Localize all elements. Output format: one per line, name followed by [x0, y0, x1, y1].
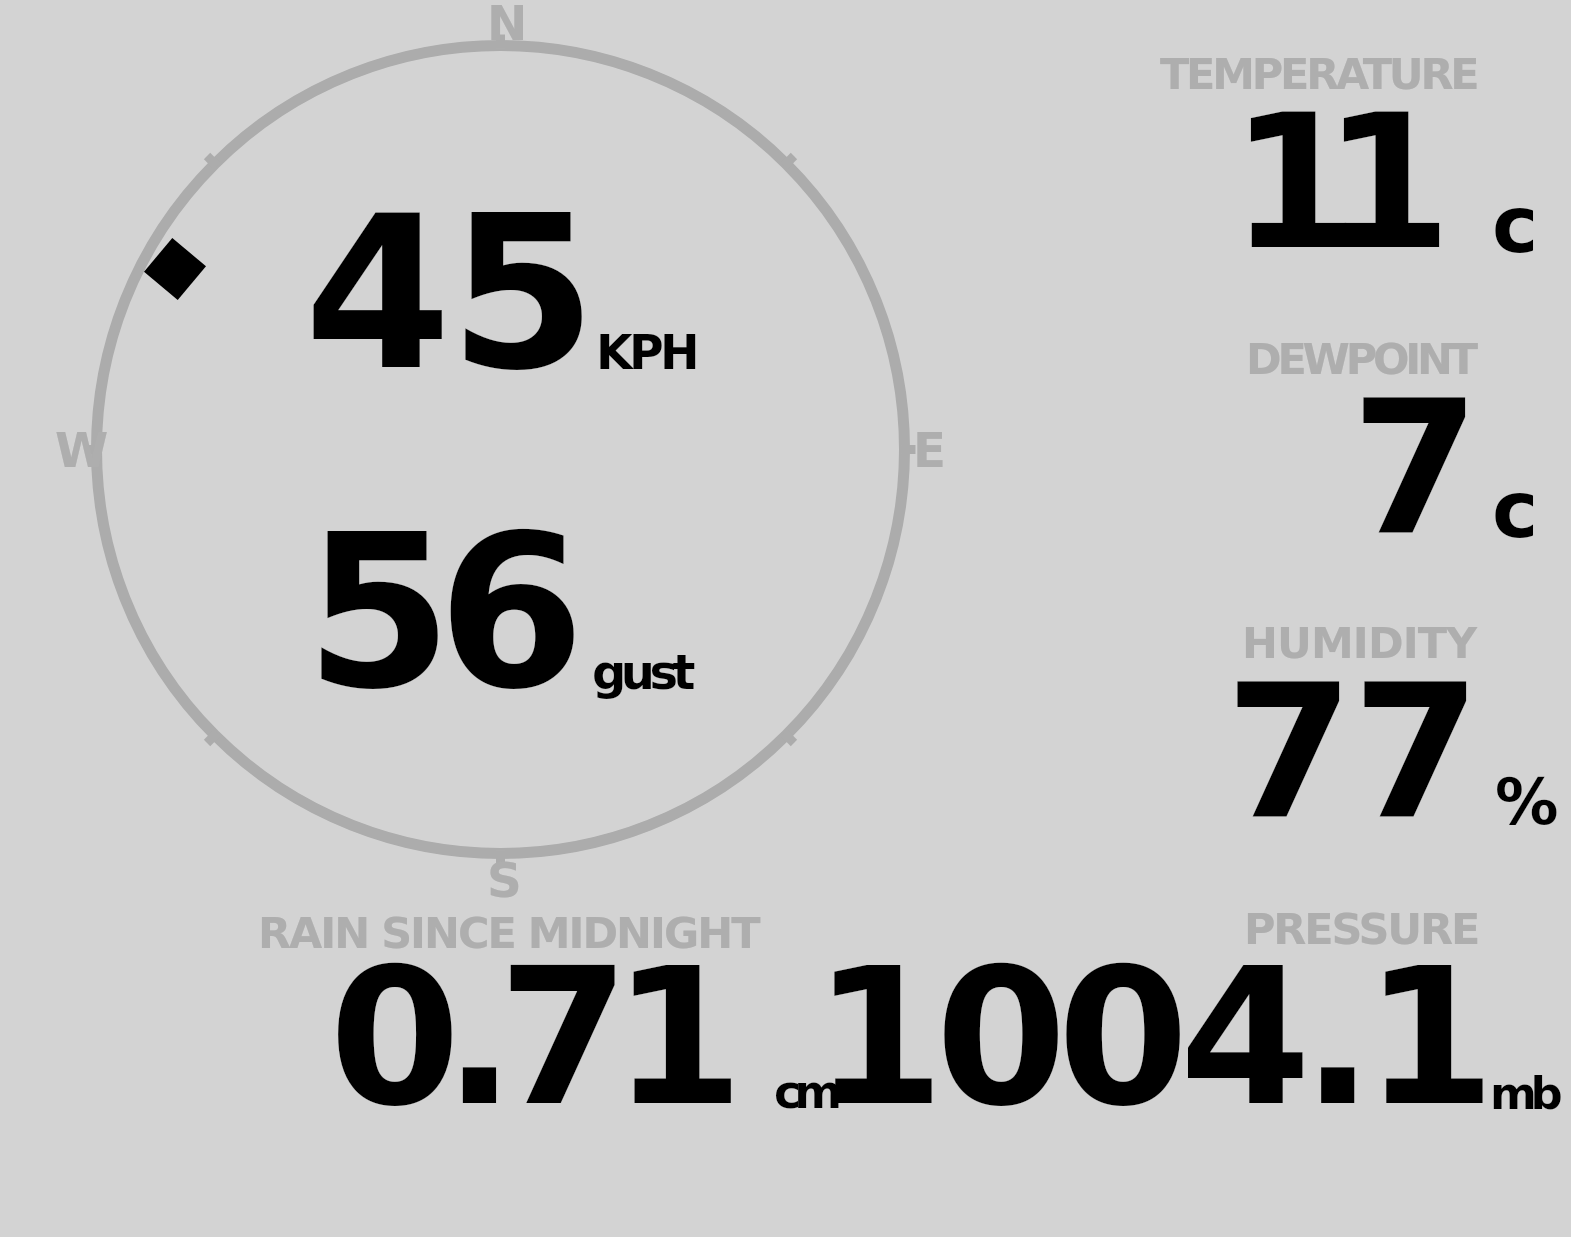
- button[interactable]: 45: [304, 170, 595, 417]
- staticText: 11: [1230, 75, 1416, 291]
- staticText: gust: [592, 644, 691, 700]
- button[interactable]: RAIN SINCE MIDNIGHT: [258, 908, 759, 958]
- staticText: %: [1495, 765, 1559, 839]
- staticText: N: [487, 0, 528, 51]
- staticText: c: [1492, 180, 1539, 271]
- staticText: KPH: [596, 325, 697, 380]
- staticText: 1004.1: [813, 927, 1487, 1147]
- button[interactable]: TEMPERATURE: [1160, 49, 1477, 99]
- staticText: 0.71: [329, 927, 727, 1147]
- staticText: W: [55, 422, 109, 478]
- button[interactable]: Wind direction compass, west north west: [96, 45, 906, 855]
- staticText: c: [1492, 465, 1539, 556]
- staticText: S: [487, 852, 522, 908]
- button[interactable]: PRESSURE: [1244, 904, 1479, 954]
- staticText: E: [913, 422, 947, 478]
- staticText: cm: [774, 1065, 836, 1119]
- button[interactable]: 56: [305, 489, 571, 736]
- button[interactable]: DEWPOINT: [1246, 334, 1474, 384]
- button[interactable]: HUMIDITY: [1242, 618, 1477, 668]
- staticText: 7: [1351, 361, 1480, 577]
- staticText: 77: [1225, 645, 1479, 861]
- staticText: mb: [1490, 1067, 1557, 1119]
